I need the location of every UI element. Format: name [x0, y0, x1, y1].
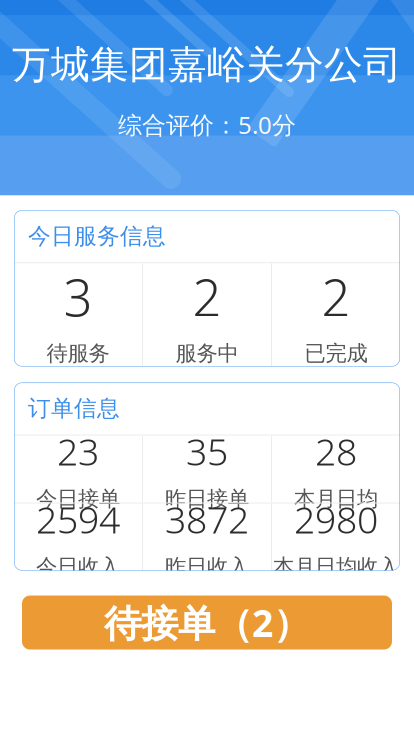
staticText: 订单信息 [28, 395, 120, 422]
staticText: 昨日收入 [165, 554, 249, 580]
staticText: 昨日接单 [165, 486, 249, 512]
staticText: 服务中 [175, 340, 238, 367]
staticText: 万城集团嘉峪关分公司 [12, 41, 402, 89]
staticText: 待接单（2） [104, 598, 310, 647]
staticText: 2594 [36, 494, 120, 544]
staticText: 28 [315, 426, 357, 476]
button[interactable]: 待接单（2） [22, 595, 392, 649]
staticText: 今日服务信息 [28, 222, 166, 250]
staticText: 综合评价：5.0分 [118, 109, 296, 141]
staticText: 2 [192, 263, 221, 330]
staticText: 23 [57, 426, 99, 476]
staticText: 待服务 [46, 340, 109, 367]
staticText: 2 [321, 263, 350, 330]
staticText: 3872 [165, 494, 249, 544]
staticText: 35 [186, 426, 228, 476]
staticText: 今日接单 [36, 486, 120, 512]
staticText: 本月日均 [294, 486, 378, 512]
staticText: 本月日均收入 [273, 554, 399, 580]
staticText: 已完成 [304, 340, 367, 367]
staticText: 今日收入 [36, 554, 120, 580]
staticText: 2980 [294, 494, 378, 544]
staticText: 3 [63, 263, 92, 330]
